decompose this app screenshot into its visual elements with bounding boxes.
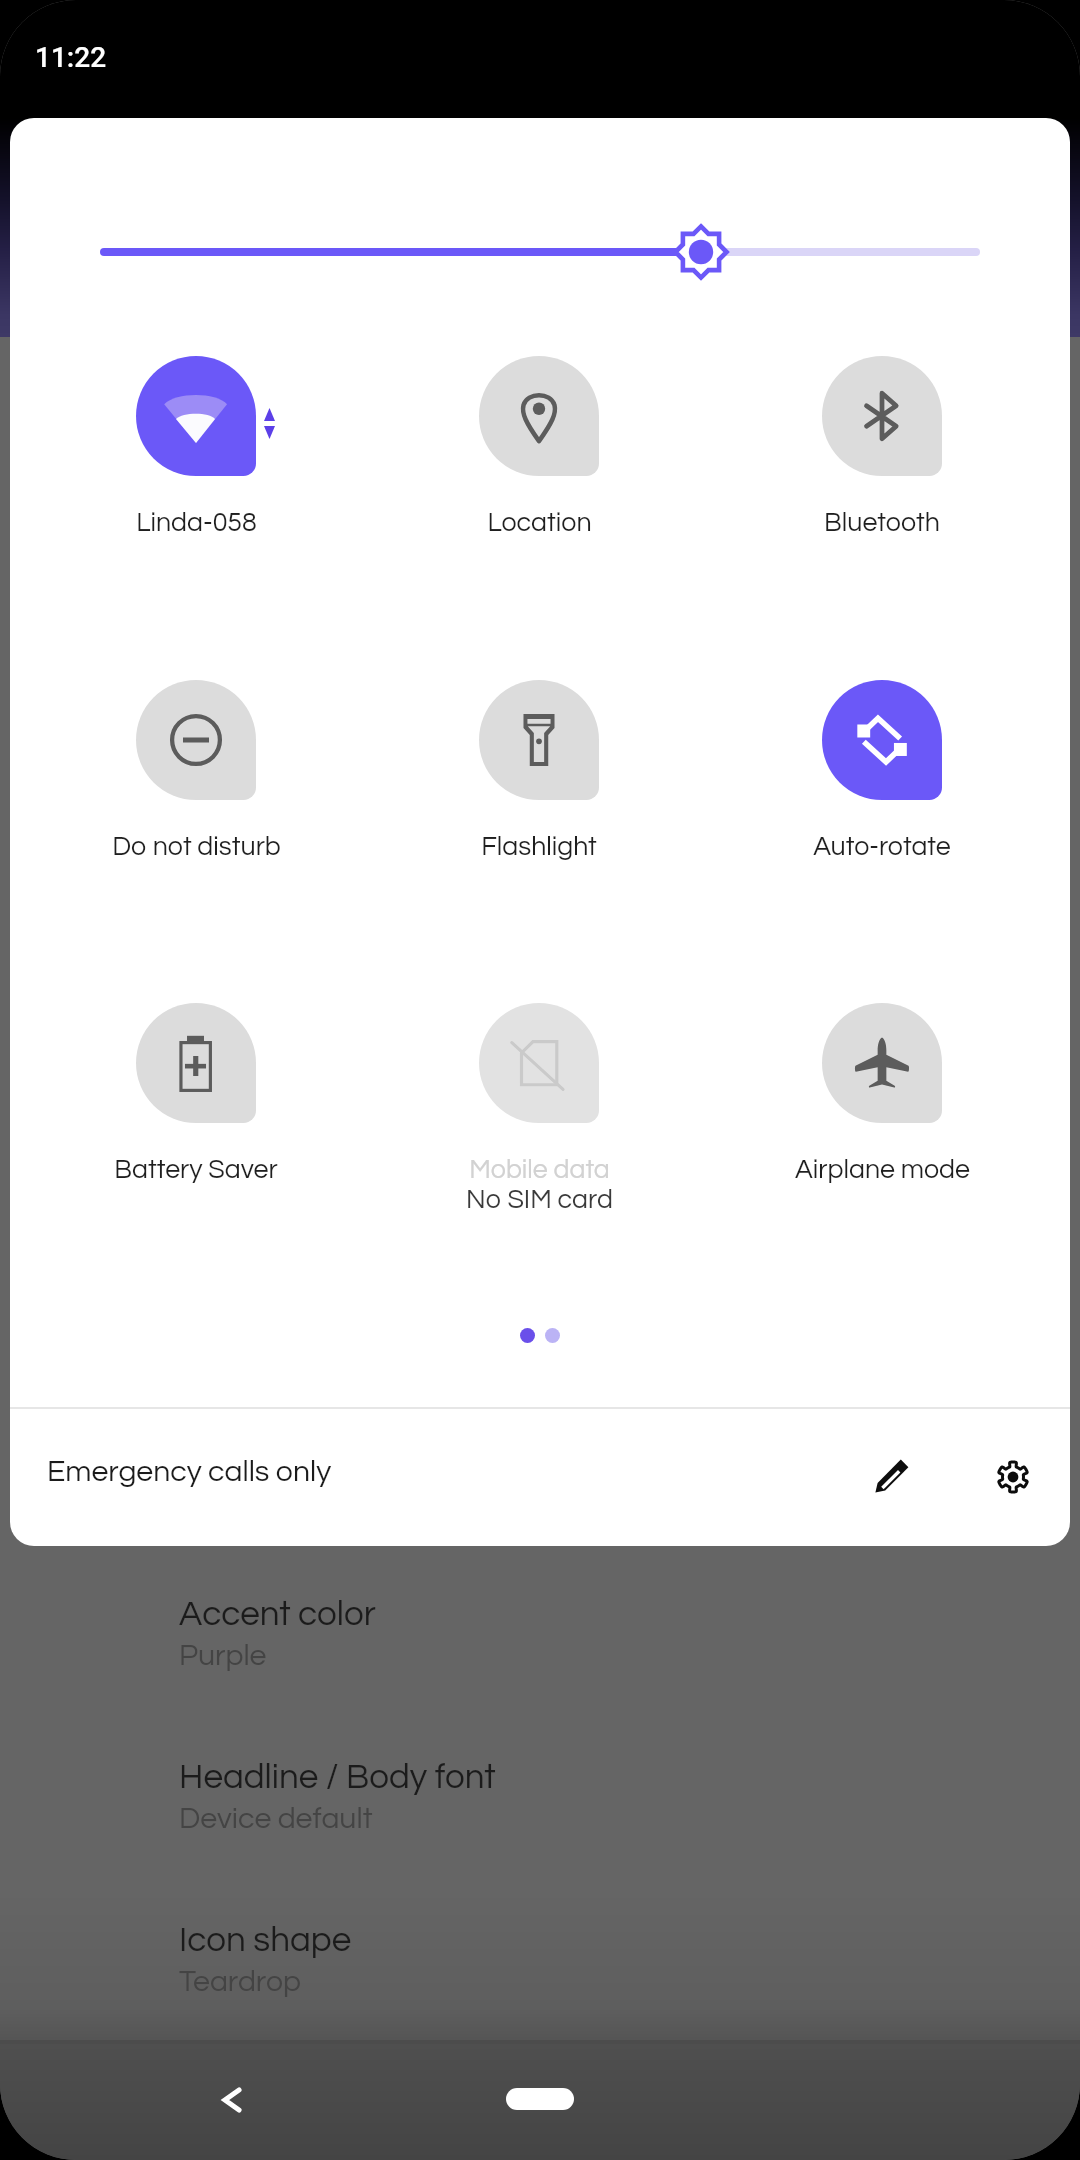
button[interactable]: Location bbox=[369, 356, 709, 606]
button[interactable]: Auto-rotate bbox=[712, 680, 1052, 930]
staticText: 11:22 bbox=[35, 41, 107, 74]
button[interactable]: Battery Saver bbox=[26, 1003, 366, 1253]
staticText: Location bbox=[487, 509, 592, 537]
button[interactable]: Do not disturb bbox=[26, 680, 366, 930]
button[interactable]: Settings bbox=[968, 1432, 1058, 1522]
button[interactable]: Home bbox=[506, 2088, 574, 2110]
staticText: Bluetooth bbox=[824, 509, 940, 537]
staticText: Auto-rotate bbox=[813, 833, 951, 861]
staticText: Linda-058 bbox=[136, 509, 257, 537]
staticText: Mobile data bbox=[469, 1156, 610, 1184]
button[interactable]: Edit bbox=[848, 1430, 938, 1520]
button[interactable]: Headline / Body font bbox=[179, 1729, 899, 1834]
button[interactable]: Flashlight bbox=[369, 680, 709, 930]
staticText: Purple bbox=[179, 1640, 267, 1671]
staticText: Teardrop bbox=[179, 1966, 301, 1997]
button[interactable]: Page 2 bbox=[545, 1328, 560, 1343]
staticText: Airplane mode bbox=[795, 1156, 970, 1184]
staticText: Flashlight bbox=[481, 833, 597, 861]
staticText: Emergency calls only bbox=[47, 1456, 332, 1487]
button[interactable]: Bluetooth bbox=[712, 356, 1052, 606]
staticText: Icon shape bbox=[179, 1922, 352, 1958]
button[interactable]: Accent color bbox=[179, 1566, 899, 1671]
button[interactable]: Icon shape bbox=[179, 1892, 899, 1997]
staticText: Battery Saver bbox=[114, 1156, 278, 1184]
button[interactable]: Airplane mode bbox=[712, 1003, 1052, 1253]
button[interactable]: Mobile data bbox=[369, 1003, 709, 1253]
staticText: Do not disturb bbox=[112, 833, 281, 861]
button[interactable]: Page 1 bbox=[520, 1328, 535, 1343]
staticText: Device default bbox=[179, 1803, 373, 1834]
staticText: Headline / Body font bbox=[179, 1759, 496, 1795]
staticText: Accent color bbox=[179, 1596, 376, 1632]
button[interactable]: Brightness bbox=[20, 212, 1060, 292]
button[interactable]: Linda-058 bbox=[26, 356, 366, 606]
button[interactable]: Back bbox=[196, 2064, 268, 2136]
staticText: No SIM card bbox=[466, 1186, 613, 1214]
